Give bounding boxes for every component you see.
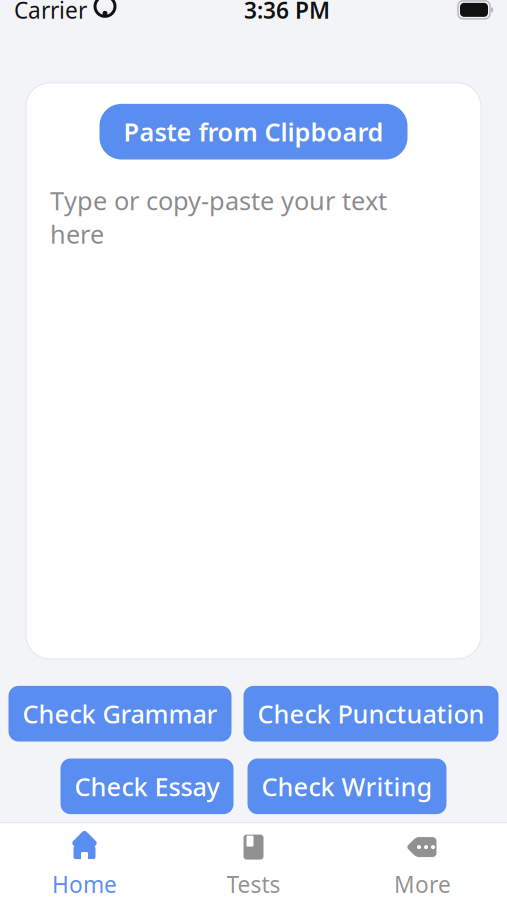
staticText: Type or copy-paste your text here [50,183,387,251]
staticText: More [394,869,451,899]
button[interactable]: Check Writing [247,758,446,814]
staticText: Check Essay [74,769,219,803]
staticText: Carrier [14,0,87,25]
staticText: Check Punctuation [257,697,484,730]
staticText: Home [52,869,117,899]
staticText: Paste from Clipboard [123,115,383,148]
staticText: Check Writing [261,769,432,803]
button[interactable]: Tests [169,824,338,900]
button[interactable]: More [338,824,507,900]
button[interactable]: Home [0,824,169,900]
button[interactable]: Check Punctuation [243,686,498,741]
button[interactable]: Check Grammar [8,686,231,741]
staticText: Tests [226,869,280,899]
staticText: 3:36 PM [244,0,330,25]
staticText: Check Grammar [22,697,217,730]
button[interactable]: Check Essay [60,758,233,814]
button[interactable]: Paste from Clipboard [99,104,407,159]
